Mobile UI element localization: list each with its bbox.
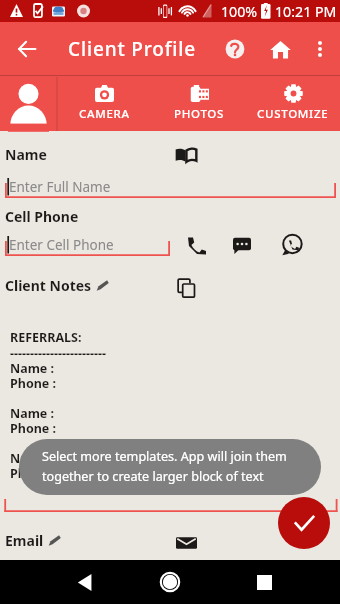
button[interactable]: Enter Full Name: [5, 176, 336, 198]
staticText: 10:21 PM: [275, 2, 337, 21]
staticText: CAMERA: [79, 106, 130, 122]
staticText: REFERRALS: ------------------------ Name…: [10, 329, 107, 481]
button[interactable]: Recents: [242, 560, 286, 604]
button[interactable]: Send message: [227, 230, 257, 260]
staticText: Client Profile: [68, 36, 197, 62]
staticText: Enter Full Name: [9, 178, 111, 196]
button[interactable]: CUSTOMIZE: [246, 75, 340, 131]
button[interactable]: CAMERA: [57, 75, 152, 131]
button[interactable]: Help: [215, 29, 255, 69]
button[interactable]: Back: [63, 560, 107, 604]
button[interactable]: Enter Cell Phone: [5, 234, 170, 256]
staticText: Select more templates. App will join the…: [42, 448, 309, 485]
button[interactable]: Profile: [0, 75, 57, 131]
button[interactable]: WhatsApp: [277, 230, 307, 260]
button[interactable]: Save: [278, 497, 330, 549]
button[interactable]: Email: [172, 529, 200, 557]
button[interactable]: Name templates: [172, 141, 200, 169]
button[interactable]: PHOTOS: [152, 75, 246, 131]
staticText: Client Notes: [5, 276, 92, 295]
button[interactable]: Copy notes: [172, 274, 200, 302]
staticText: PHOTOS: [174, 106, 225, 122]
button[interactable]: More options: [303, 32, 337, 66]
staticText: 100%: [221, 2, 258, 21]
staticText: Cell Phone: [5, 207, 79, 226]
button[interactable]: Call: [182, 230, 212, 260]
staticText: Email: [5, 531, 44, 550]
button[interactable]: Back: [6, 28, 47, 69]
button[interactable]: Home: [260, 29, 300, 69]
staticText: CUSTOMIZE: [257, 106, 329, 122]
staticText: Enter Cell Phone: [9, 236, 114, 254]
button[interactable]: Home: [148, 560, 192, 604]
staticText: Name: [5, 145, 47, 164]
